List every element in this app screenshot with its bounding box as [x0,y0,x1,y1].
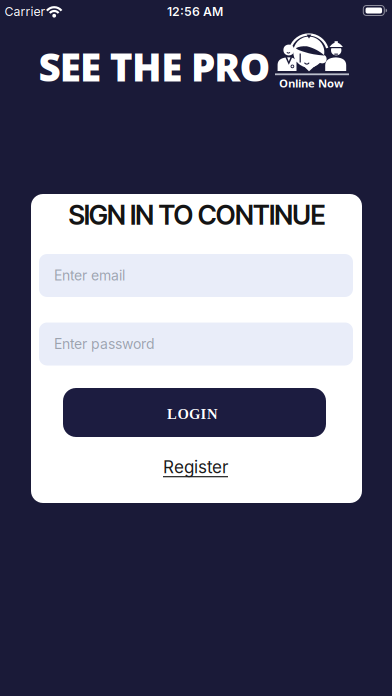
staticText: 12:56 AM [167,4,223,19]
button[interactable]: Enter password [39,322,353,365]
staticText: Enter password [54,335,155,352]
staticText: Carrier [4,4,45,19]
staticText: Register [163,457,228,477]
staticText: SIGN IN TO CONTINUE [69,199,325,231]
button[interactable]: Enter email [39,254,353,297]
button[interactable]: Register [163,457,228,477]
staticText: Online Now [279,75,344,91]
staticText: Enter email [54,267,125,284]
staticText: LOGIN [167,406,218,422]
staticText: SEE THE PRO [38,40,270,93]
button[interactable]: LOGIN [63,388,326,437]
